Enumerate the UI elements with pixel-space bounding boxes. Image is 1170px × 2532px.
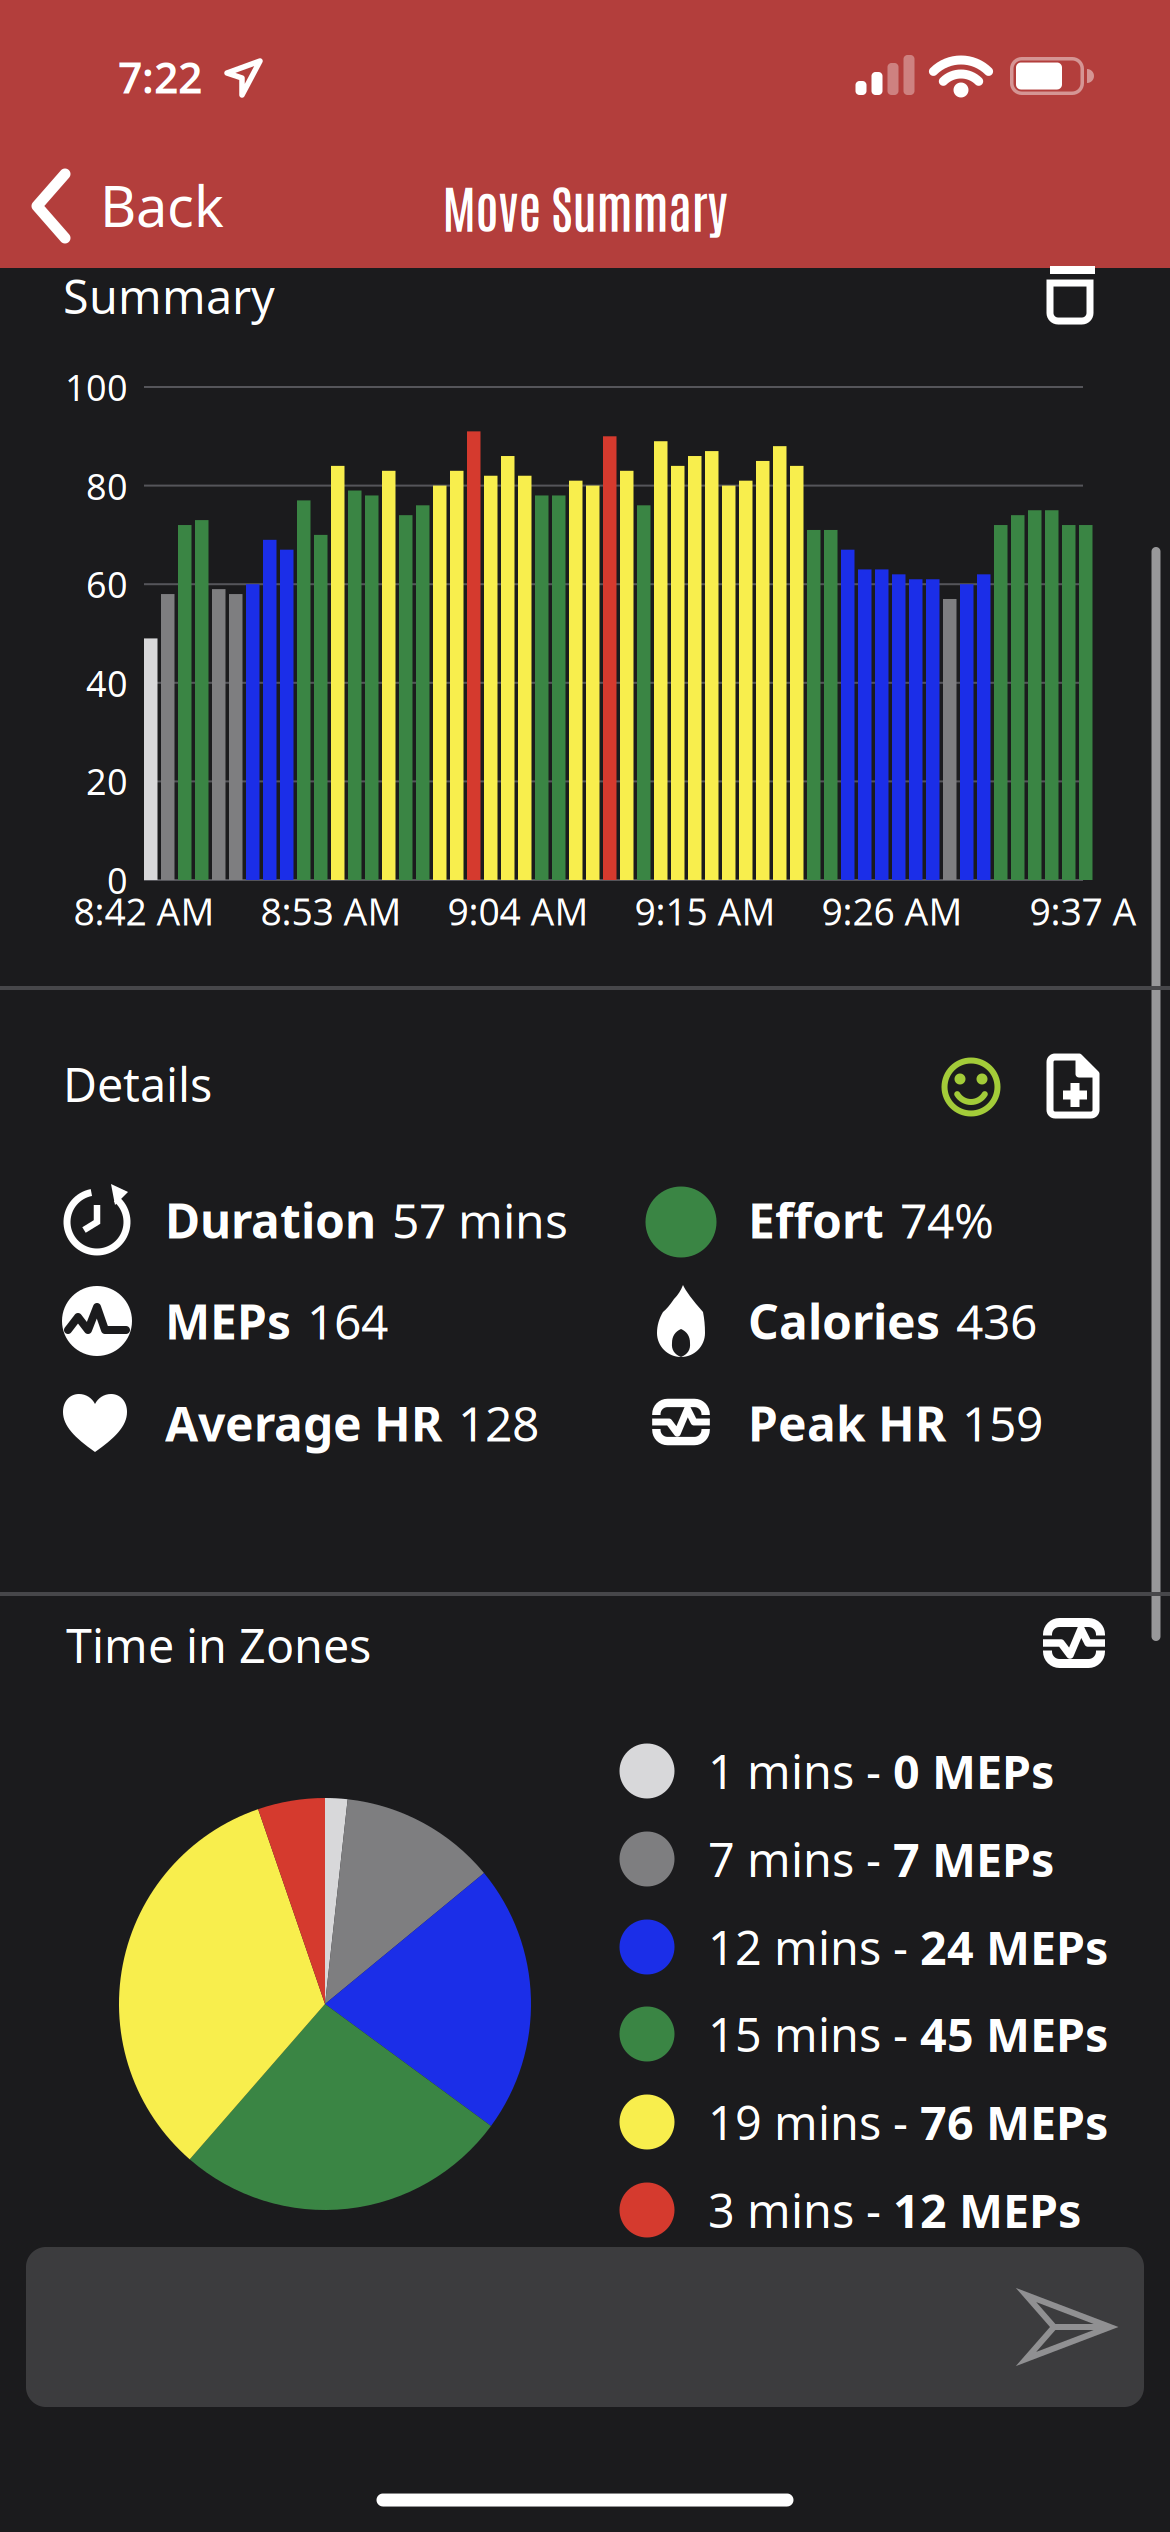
button[interactable]: Zones chart [1042, 1617, 1106, 1669]
staticText: Average HR [165, 1391, 442, 1455]
staticText: 159 [962, 1391, 1043, 1455]
staticText: MEPs [165, 1289, 291, 1353]
staticText: 1 mins - [708, 1740, 893, 1802]
staticText: 40 [86, 659, 128, 707]
button[interactable]: Add comment [26, 2247, 1144, 2407]
staticText: 60 [86, 560, 128, 608]
staticText: 128 [458, 1391, 539, 1455]
staticText: 7 mins - [708, 1828, 893, 1890]
staticText: Calories [748, 1289, 940, 1353]
staticText: Peak HR [748, 1391, 946, 1455]
staticText: Details [63, 1053, 212, 1115]
staticText: 100 [65, 363, 128, 411]
staticText: 7 MEPs [893, 1828, 1054, 1890]
staticText: Move Summary [442, 173, 727, 239]
staticText: 24 MEPs [920, 1916, 1108, 1978]
staticText: 9:15 AM [634, 886, 775, 936]
staticText: Effort [748, 1188, 884, 1252]
staticText: Back [100, 168, 224, 242]
staticText: 19 mins - [708, 2091, 920, 2153]
staticText: 9:26 AM [821, 886, 962, 936]
staticText: 20 [86, 757, 128, 805]
button[interactable]: Send [1018, 2289, 1118, 2365]
staticText: 80 [86, 462, 128, 510]
button[interactable]: Add note [1045, 1052, 1101, 1120]
staticText: 9:04 AM [447, 886, 588, 936]
button[interactable]: Rate workout [939, 1055, 1003, 1119]
staticText: Summary [63, 265, 275, 327]
staticText: 74% [900, 1188, 994, 1252]
staticText: 57 mins [392, 1188, 568, 1252]
staticText: 3 mins - [708, 2179, 893, 2241]
staticText: 0 [107, 856, 128, 904]
staticText: 12 mins - [708, 1916, 920, 1978]
staticText: 0 MEPs [893, 1740, 1054, 1802]
staticText: 164 [307, 1289, 388, 1353]
staticText: 7:22 [118, 49, 202, 105]
staticText: 76 MEPs [920, 2091, 1108, 2153]
staticText: Duration [165, 1188, 376, 1252]
button[interactable]: Copy chart [1043, 266, 1103, 330]
staticText: 45 MEPs [920, 2003, 1108, 2065]
staticText: Time in Zones [66, 1614, 371, 1676]
staticText: 8:53 AM [260, 886, 401, 936]
staticText: 436 [956, 1289, 1037, 1353]
button[interactable]: Back [28, 160, 258, 250]
staticText: 12 MEPs [893, 2179, 1081, 2241]
staticText: 9:37 A [1029, 886, 1136, 936]
staticText: 8:42 AM [73, 886, 214, 936]
staticText: 15 mins - [708, 2003, 920, 2065]
